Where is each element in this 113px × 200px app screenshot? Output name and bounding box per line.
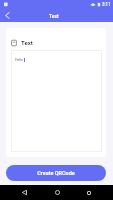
staticText: Text [21,39,33,46]
staticText: Hello [15,58,24,62]
button[interactable]: Hello [11,50,102,152]
button[interactable]: Create QRCode [6,165,106,181]
button[interactable]: Back [0,9,14,22]
button[interactable]: Recents [81,185,97,200]
button[interactable]: Back [16,185,32,200]
staticText: 3:11 [102,2,111,7]
staticText: Create QRCode [37,170,75,176]
staticText: Text [49,13,59,19]
button[interactable]: Home [49,185,65,200]
